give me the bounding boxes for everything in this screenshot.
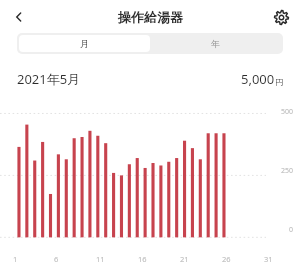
- staticText: 31: [264, 254, 273, 264]
- staticText: 11: [96, 254, 105, 264]
- button[interactable]: 年: [150, 35, 281, 52]
- button[interactable]: Back: [6, 4, 32, 30]
- staticText: 操作給湯器: [118, 9, 183, 25]
- staticText: 円: [275, 77, 283, 87]
- staticText: 1: [13, 254, 18, 264]
- staticText: 16: [138, 254, 147, 264]
- button[interactable]: 月: [19, 35, 150, 52]
- staticText: 年: [211, 38, 220, 49]
- staticText: 500: [281, 107, 294, 117]
- staticText: 5,000: [241, 70, 275, 88]
- staticText: 2021年5月: [17, 70, 81, 88]
- staticText: 月: [80, 38, 89, 49]
- staticText: 6: [54, 254, 59, 264]
- staticText: 21: [180, 254, 189, 264]
- staticText: 0: [289, 225, 294, 235]
- staticText: 250: [281, 166, 294, 176]
- button[interactable]: Settings: [268, 4, 294, 30]
- staticText: 26: [222, 254, 231, 264]
